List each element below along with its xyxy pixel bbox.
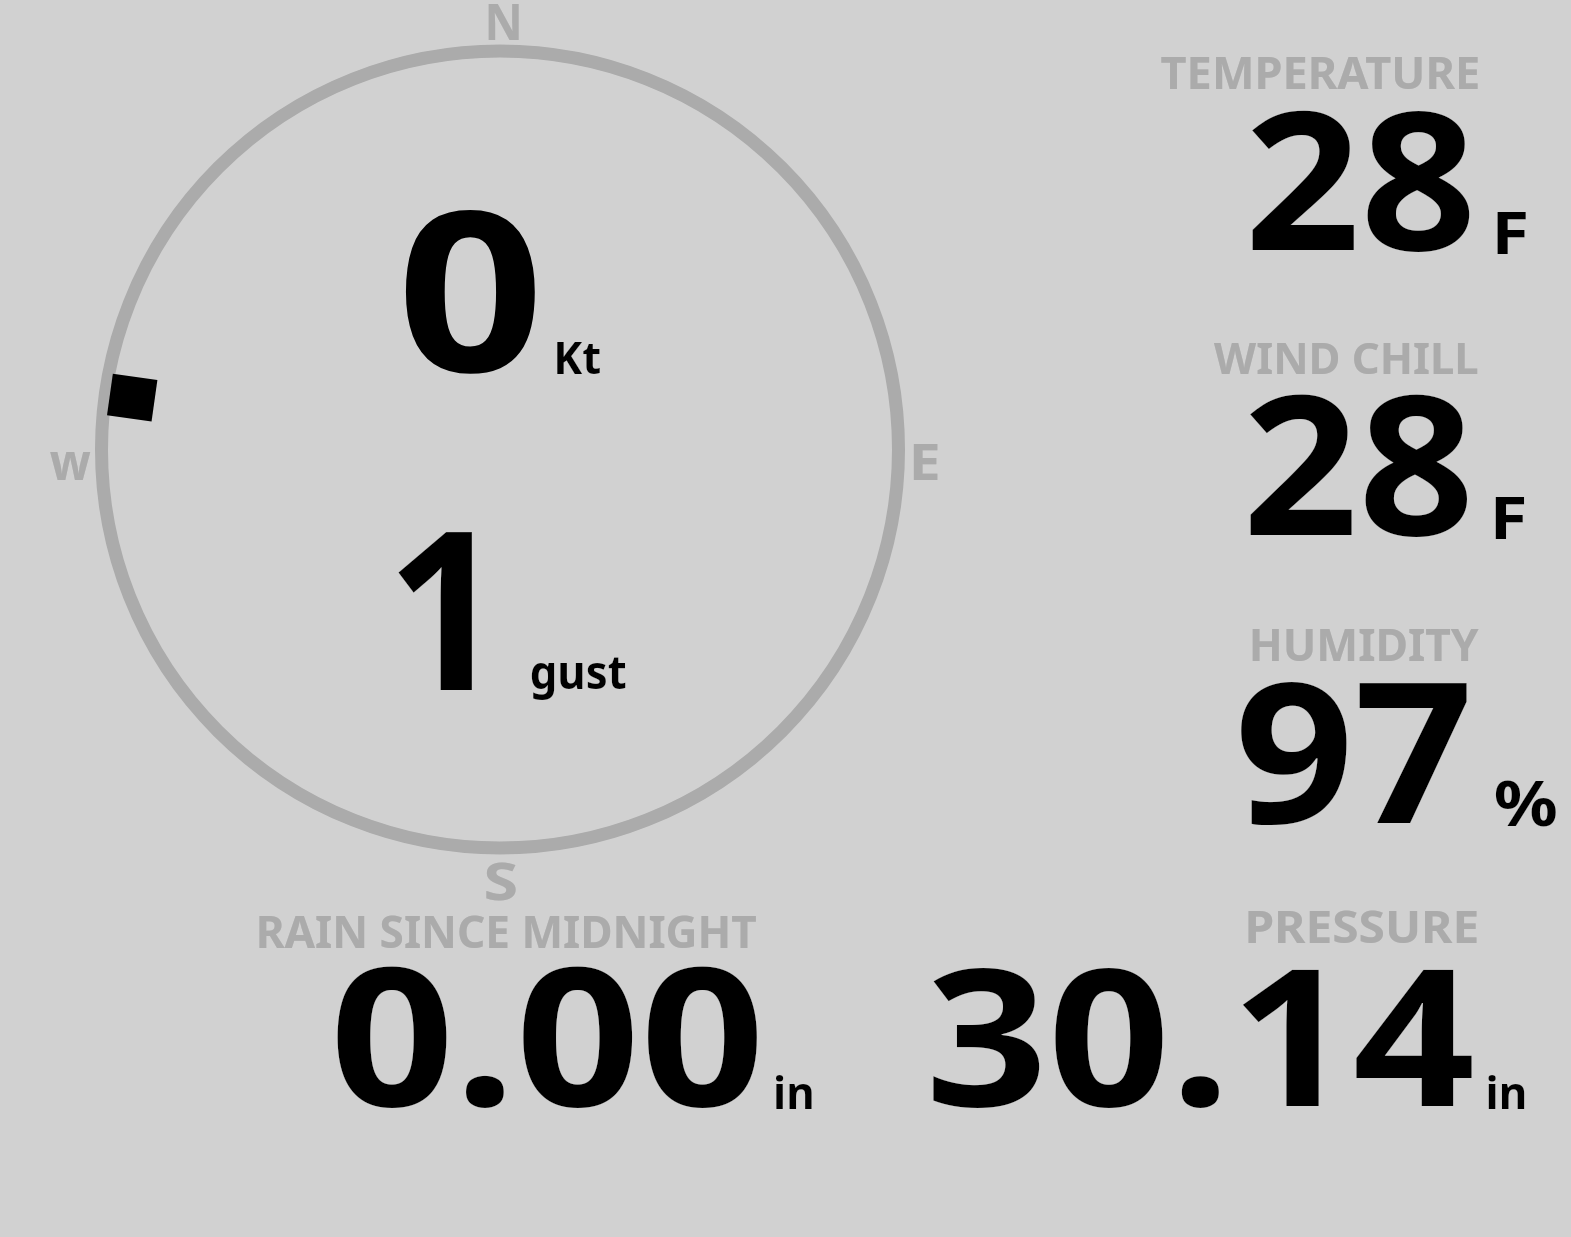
button[interactable]: Pressure 30.14 inches	[900, 890, 1540, 1125]
button[interactable]: Wind speed 0 knots, gust 1, direction we…	[40, 0, 970, 910]
button[interactable]: Wind chill 28 degrees Fahrenheit	[1130, 315, 1550, 580]
button[interactable]: Rain since midnight 0.00 inches	[230, 895, 830, 1125]
button[interactable]: Humidity 97 percent	[1130, 600, 1570, 860]
button[interactable]: Temperature 28 degrees Fahrenheit	[1130, 30, 1550, 300]
